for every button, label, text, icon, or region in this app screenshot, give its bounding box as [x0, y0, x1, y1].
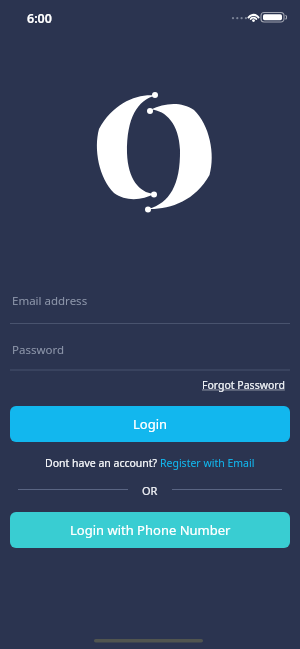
staticText: Register with Email	[160, 456, 255, 470]
staticText: Password	[12, 342, 65, 358]
button[interactable]: Register with Email	[160, 456, 255, 470]
button[interactable]: Email address	[10, 292, 290, 324]
staticText: Forgot Password	[202, 378, 285, 392]
button[interactable]: Login	[10, 406, 290, 442]
staticText: Login with Phone Number	[70, 521, 231, 539]
staticText: 6:00	[27, 10, 52, 27]
staticText: Dont have an account?	[45, 456, 160, 470]
staticText: Email address	[12, 293, 88, 309]
button[interactable]: Login with Phone Number	[10, 512, 290, 548]
staticText: OR	[142, 483, 158, 498]
button[interactable]: Password	[10, 341, 290, 371]
button[interactable]: Forgot Password	[202, 378, 285, 392]
staticText: Login	[133, 415, 168, 433]
